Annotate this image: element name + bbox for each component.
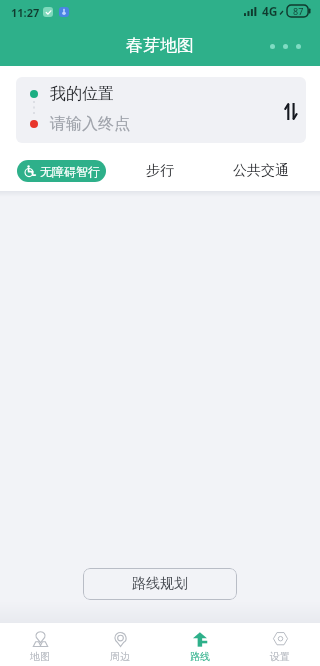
button[interactable]: 路线规划 bbox=[83, 568, 237, 600]
staticText: 设置 bbox=[270, 650, 290, 663]
staticText: 11:27 bbox=[11, 5, 40, 20]
button[interactable]: 周边 bbox=[80, 623, 160, 666]
staticText: 路线 bbox=[190, 650, 210, 663]
button[interactable]: 地图 bbox=[0, 623, 80, 666]
staticText: 无障碍智行 bbox=[40, 164, 100, 179]
staticText: 步行 bbox=[146, 162, 174, 180]
staticText: 我的位置 bbox=[50, 84, 114, 104]
button[interactable]: 公共交通 bbox=[231, 158, 291, 184]
staticText: 路线规划 bbox=[132, 575, 188, 593]
staticText: 公共交通 bbox=[233, 162, 289, 180]
button[interactable]: 无障碍智行 bbox=[17, 160, 106, 182]
button[interactable]: More options bbox=[256, 32, 320, 61]
staticText: 周边 bbox=[110, 650, 130, 663]
staticText: 请输入终点 bbox=[50, 114, 130, 134]
button[interactable]: 设置 bbox=[240, 623, 320, 666]
button[interactable]: 路线 bbox=[160, 623, 240, 666]
button[interactable]: 步行 bbox=[144, 158, 176, 184]
staticText: 地图 bbox=[30, 650, 50, 663]
staticText: 87 bbox=[293, 5, 304, 17]
staticText: 春芽地图 bbox=[126, 35, 194, 56]
button[interactable]: Swap origin and destination bbox=[277, 98, 303, 124]
staticText: 4G bbox=[262, 3, 278, 19]
